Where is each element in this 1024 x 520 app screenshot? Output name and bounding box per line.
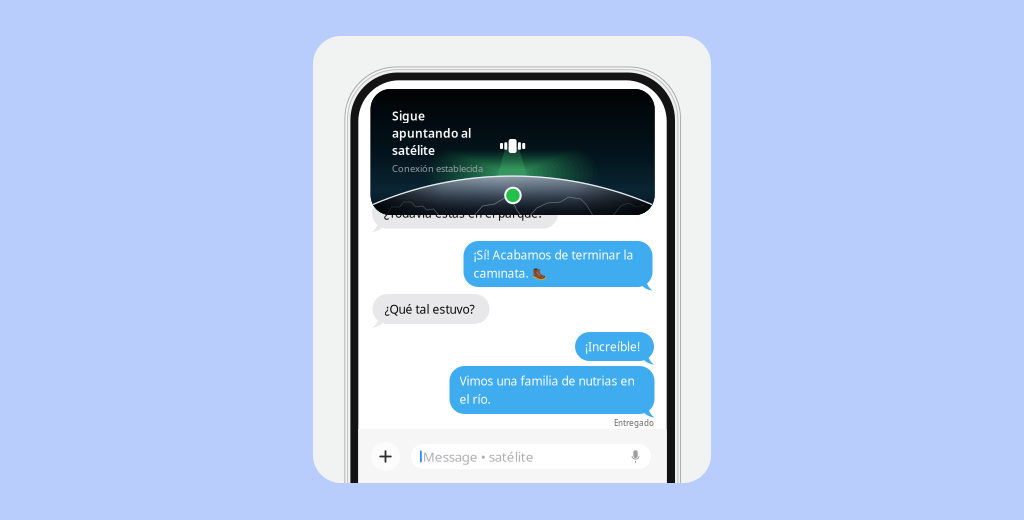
button[interactable]: ¡Increíble! [575,332,654,361]
staticText: apuntando al [392,125,471,141]
button[interactable]: Vimos una familia de nutrias en [449,366,654,414]
staticText: el río. [459,391,490,407]
staticText: ¡Sí! Acabamos de terminar la [473,247,633,263]
staticText: satélite [392,142,435,158]
button[interactable]: Message field [411,444,651,469]
staticText: Vimos una familia de nutrias en [459,373,634,389]
staticText: caminata. 🥾 [473,265,546,281]
staticText: Sigue [392,108,425,124]
staticText: Message • satélite [423,448,534,465]
button[interactable]: ¿Todavía estás en el parque? [372,197,558,228]
staticText: ¿Qué tal estuvo? [384,301,474,317]
staticText: ¿Todavía estás en el parque? [384,205,543,221]
button[interactable]: Add attachment [371,442,400,471]
button[interactable]: ¡Sí! Acabamos de terminar la [463,241,652,287]
staticText: Entregado [614,418,654,428]
button[interactable]: ¿Qué tal estuvo? [372,294,489,324]
staticText: Conexión establecida [392,162,483,175]
staticText: ¡Increíble! [585,338,640,354]
